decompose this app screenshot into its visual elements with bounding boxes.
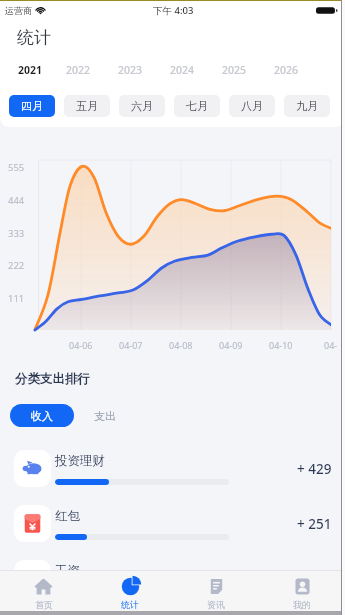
staticText: 四月	[21, 99, 43, 113]
button[interactable]: 八月	[229, 95, 275, 117]
button[interactable]: 2022	[52, 55, 104, 85]
staticText: 统计	[17, 27, 51, 48]
staticText: 333	[8, 227, 25, 240]
button[interactable]: 投资理财	[0, 441, 345, 496]
button[interactable]: 2021	[18, 55, 52, 85]
staticText: 运营商	[5, 5, 32, 16]
button[interactable]: 2023	[104, 55, 156, 85]
staticText: 首页	[35, 599, 53, 610]
button[interactable]: 工资	[0, 551, 345, 606]
staticText: 分类支出排行	[15, 371, 90, 387]
staticText: 04-07	[119, 339, 143, 351]
button[interactable]: 支出	[74, 404, 136, 427]
button[interactable]: 红包	[0, 496, 345, 551]
staticText: 2021	[18, 63, 43, 77]
button[interactable]: 五月	[64, 95, 110, 117]
staticText: 八月	[241, 99, 263, 113]
button[interactable]: 资讯	[173, 571, 259, 611]
staticText: 2024	[170, 63, 195, 77]
staticText: 七月	[186, 99, 208, 113]
staticText: 444	[8, 194, 25, 207]
button[interactable]: 首页	[0, 571, 87, 611]
staticText: 投资理财	[55, 453, 105, 469]
staticText: 555	[8, 161, 25, 174]
staticText: 资讯	[207, 599, 225, 610]
staticText: 04-06	[69, 339, 93, 351]
staticText: 2025	[222, 63, 247, 77]
staticText: 2022	[66, 63, 91, 77]
staticText: 九月	[296, 99, 318, 113]
staticText: 04-09	[219, 339, 243, 351]
staticText: 04-	[324, 339, 338, 351]
staticText: 五月	[76, 99, 98, 113]
staticText: 统计	[121, 599, 139, 610]
button[interactable]: 统计	[87, 571, 173, 611]
button[interactable]: 收入	[10, 404, 74, 427]
button[interactable]: 2025	[208, 55, 260, 85]
staticText: + 429	[297, 460, 332, 478]
staticText: 2023	[118, 63, 143, 77]
staticText: 收入	[31, 409, 53, 423]
staticText: 111	[8, 292, 25, 305]
staticText: 222	[8, 259, 25, 272]
staticText: + 180	[297, 570, 332, 588]
button[interactable]: 我的	[259, 571, 345, 611]
button[interactable]: 2024	[156, 55, 208, 85]
staticText: 04-08	[169, 339, 193, 351]
staticText: 下午 4:03	[153, 4, 194, 17]
button[interactable]: 四月	[9, 95, 55, 117]
staticText: 2026	[274, 63, 299, 77]
staticText: 红包	[55, 508, 80, 524]
staticText: + 251	[297, 515, 332, 533]
button[interactable]: 六月	[119, 95, 165, 117]
staticText: 支出	[94, 409, 116, 423]
button[interactable]: 九月	[284, 95, 330, 117]
staticText: 我的	[293, 599, 311, 610]
staticText: 04-10	[269, 339, 293, 351]
button[interactable]: 七月	[174, 95, 220, 117]
staticText: 工资	[55, 563, 80, 579]
staticText: 六月	[131, 99, 153, 113]
button[interactable]: 2026	[260, 55, 312, 85]
